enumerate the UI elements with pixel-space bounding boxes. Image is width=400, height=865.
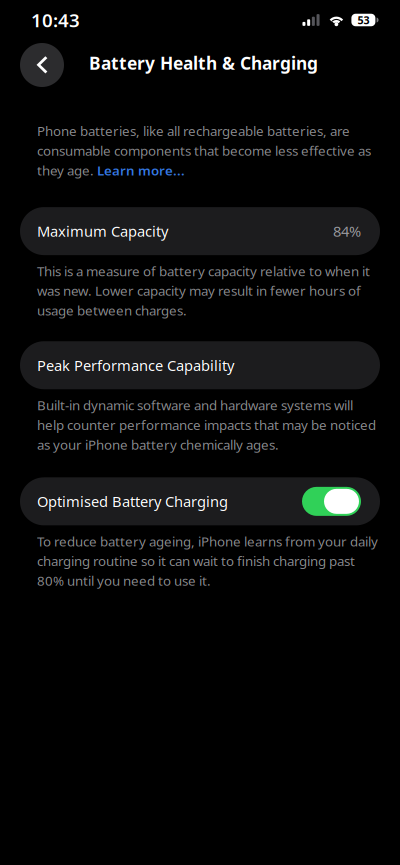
staticText: 10:43 — [31, 8, 80, 32]
staticText: 53 — [357, 13, 369, 27]
staticText: Battery Health & Charging — [89, 51, 318, 74]
button[interactable]: Optimised Battery Charging — [0, 477, 400, 525]
button[interactable]: Back — [20, 41, 64, 85]
staticText: 84% — [333, 221, 361, 241]
staticText: This is a measure of battery capacity re… — [37, 262, 370, 319]
staticText: Peak Performance Capability — [37, 355, 234, 375]
staticText: Optimised Battery Charging — [37, 492, 228, 511]
staticText: Maximum Capacity — [37, 221, 168, 241]
button[interactable]: Peak Performance Capability — [0, 341, 400, 389]
button[interactable]: Maximum Capacity — [0, 207, 400, 255]
staticText: Built-in dynamic software and hardware s… — [37, 396, 376, 453]
staticText: Phone batteries, like all rechargeable b… — [37, 122, 371, 179]
staticText: To reduce battery ageing, iPhone learns … — [37, 532, 378, 589]
